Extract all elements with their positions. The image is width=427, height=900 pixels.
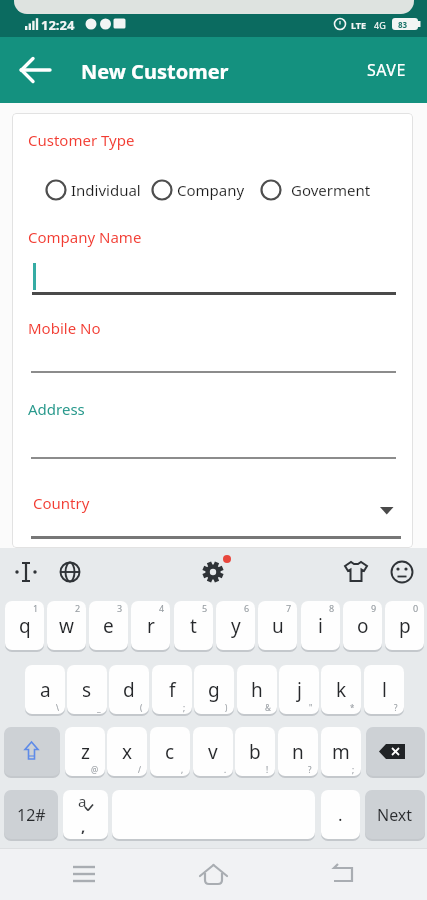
button[interactable]: u bbox=[258, 601, 297, 650]
staticText: Country bbox=[33, 493, 90, 513]
staticText: SAVE bbox=[367, 59, 406, 81]
button[interactable] bbox=[63, 790, 108, 839]
staticText: h bbox=[251, 677, 263, 703]
button[interactable]: r bbox=[131, 601, 170, 650]
staticText: a bbox=[40, 677, 51, 703]
staticText: l bbox=[382, 677, 387, 703]
button[interactable]: g bbox=[194, 665, 234, 714]
button[interactable]: q bbox=[5, 601, 44, 650]
staticText: t bbox=[190, 613, 197, 639]
staticText: p bbox=[399, 613, 411, 639]
button[interactable]: f bbox=[152, 665, 192, 714]
button[interactable]: . bbox=[321, 790, 360, 839]
staticText: z bbox=[81, 739, 90, 765]
button[interactable]: m bbox=[321, 727, 361, 776]
staticText: 8 bbox=[329, 602, 335, 614]
button[interactable]: j bbox=[279, 665, 319, 714]
staticText: ) bbox=[225, 702, 228, 713]
button[interactable] bbox=[64, 854, 104, 894]
button[interactable]: c bbox=[150, 727, 190, 776]
button[interactable]: t bbox=[174, 601, 213, 650]
button[interactable] bbox=[196, 556, 230, 590]
staticText: 7 bbox=[286, 602, 292, 614]
button[interactable] bbox=[14, 48, 58, 92]
staticText: k bbox=[336, 677, 347, 703]
staticText: ( bbox=[140, 702, 143, 713]
staticText: , bbox=[81, 816, 86, 836]
button[interactable]: v bbox=[193, 727, 233, 776]
button[interactable] bbox=[10, 556, 44, 590]
button[interactable]: k bbox=[321, 665, 361, 714]
button[interactable]: a bbox=[25, 665, 65, 714]
staticText: LTE bbox=[351, 19, 367, 31]
button[interactable]: n bbox=[278, 727, 318, 776]
button[interactable]: p bbox=[385, 601, 424, 650]
staticText: a bbox=[78, 791, 87, 811]
button[interactable]: w bbox=[47, 601, 86, 650]
button[interactable] bbox=[385, 556, 419, 590]
staticText: c bbox=[165, 739, 175, 765]
staticText: Individual bbox=[71, 180, 141, 200]
button[interactable] bbox=[193, 854, 233, 894]
staticText: \ bbox=[56, 702, 59, 713]
button[interactable]: e bbox=[89, 601, 128, 650]
button[interactable]: y bbox=[216, 601, 255, 650]
staticText: n bbox=[292, 739, 304, 765]
button[interactable] bbox=[44, 172, 154, 208]
staticText: New Customer bbox=[81, 58, 229, 85]
staticText: ; bbox=[352, 764, 355, 775]
button[interactable] bbox=[54, 556, 88, 590]
button[interactable]: Next bbox=[365, 790, 425, 839]
staticText: q bbox=[19, 613, 31, 639]
button[interactable]: l bbox=[364, 665, 404, 714]
staticText: 12:24 bbox=[41, 16, 75, 34]
staticText: 0 bbox=[413, 602, 419, 614]
staticText: x bbox=[122, 739, 133, 765]
staticText: " bbox=[309, 702, 313, 713]
button[interactable] bbox=[323, 854, 363, 894]
staticText: 3 bbox=[117, 602, 123, 614]
button[interactable]: d bbox=[109, 665, 149, 714]
button[interactable]: s bbox=[67, 665, 107, 714]
staticText: i bbox=[318, 613, 323, 639]
staticText: d bbox=[123, 677, 135, 703]
staticText: @ bbox=[91, 764, 99, 775]
button[interactable]: o bbox=[343, 601, 382, 650]
staticText: w bbox=[59, 613, 74, 639]
button[interactable] bbox=[339, 556, 373, 590]
staticText: , bbox=[181, 764, 184, 775]
staticText: m bbox=[332, 739, 350, 765]
staticText: Company bbox=[177, 180, 245, 200]
button[interactable]: i bbox=[301, 601, 340, 650]
staticText: / bbox=[138, 764, 141, 775]
staticText: 12# bbox=[17, 804, 46, 826]
staticText: ? bbox=[394, 702, 398, 713]
staticText: 1 bbox=[33, 602, 39, 614]
button[interactable]: 12# bbox=[4, 790, 58, 839]
staticText: f bbox=[169, 677, 176, 703]
button[interactable] bbox=[4, 727, 60, 776]
button[interactable]: h bbox=[237, 665, 277, 714]
button[interactable]: b bbox=[235, 727, 275, 776]
staticText: 83 bbox=[398, 19, 408, 30]
button[interactable] bbox=[259, 172, 375, 208]
staticText: o bbox=[357, 613, 369, 639]
button[interactable] bbox=[366, 727, 425, 776]
staticText: j bbox=[297, 677, 302, 703]
staticText: s bbox=[82, 677, 92, 703]
staticText: Goverment bbox=[291, 180, 371, 200]
button[interactable]: z bbox=[65, 727, 105, 776]
staticText: _ bbox=[97, 702, 101, 713]
staticText: b bbox=[249, 739, 261, 765]
button[interactable] bbox=[150, 172, 254, 208]
staticText: Customer Type bbox=[28, 130, 135, 150]
button[interactable]: SAVE bbox=[354, 49, 418, 91]
staticText: . bbox=[338, 803, 343, 826]
button[interactable]: x bbox=[107, 727, 147, 776]
staticText: 6 bbox=[244, 602, 250, 614]
